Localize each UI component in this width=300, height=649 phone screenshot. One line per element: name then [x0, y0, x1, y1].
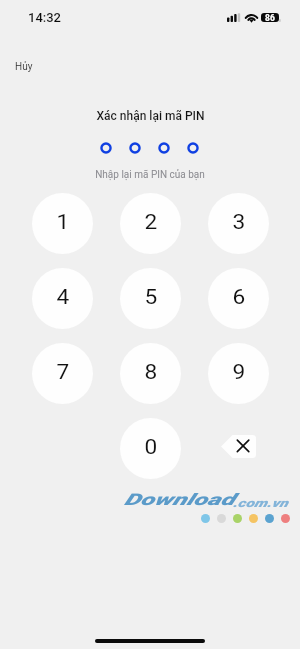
staticText: 1	[56, 210, 69, 235]
button[interactable]: 5	[120, 268, 181, 329]
staticText: 8	[144, 360, 157, 385]
button[interactable]: 4	[32, 268, 93, 329]
staticText: 3	[232, 210, 245, 235]
staticText: 86	[265, 13, 275, 22]
button[interactable]: 7	[32, 343, 93, 404]
staticText: 4	[56, 285, 69, 310]
button[interactable]: 3	[208, 193, 269, 254]
staticText: 0	[144, 435, 157, 460]
button[interactable]: 8	[120, 343, 181, 404]
staticText: Hủy	[15, 61, 33, 73]
staticText: .com.vn	[233, 496, 288, 509]
button[interactable]: Delete	[221, 435, 256, 458]
staticText: Nhập lại mã PIN của bạn	[95, 169, 205, 181]
button[interactable]: 1	[32, 193, 93, 254]
staticText: 6	[232, 285, 245, 310]
button[interactable]: 2	[120, 193, 181, 254]
button[interactable]: Hủy	[11, 57, 37, 77]
staticText: 14:32	[28, 10, 62, 25]
staticText: 9	[232, 360, 245, 385]
staticText: Download	[124, 490, 236, 509]
button[interactable]: 6	[208, 268, 269, 329]
staticText: 2	[144, 210, 157, 235]
button[interactable]: 9	[208, 343, 269, 404]
staticText: 5	[144, 285, 157, 310]
staticText: 7	[56, 360, 69, 385]
button[interactable]: 0	[120, 418, 181, 479]
staticText: Xác nhận lại mã PIN	[96, 109, 205, 123]
